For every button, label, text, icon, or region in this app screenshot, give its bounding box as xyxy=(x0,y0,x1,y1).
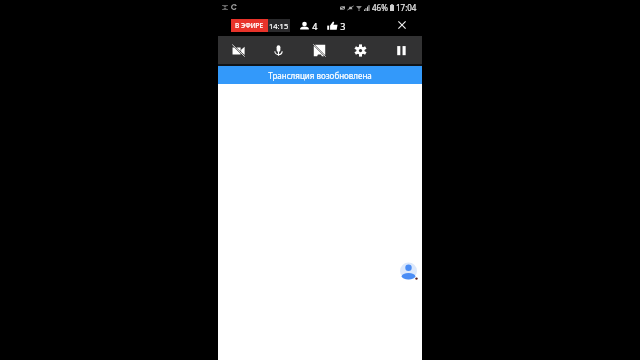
staticText: 4 xyxy=(310,20,318,32)
button[interactable]: 4 xyxy=(299,20,318,32)
button[interactable]: Participant xyxy=(400,261,417,281)
button[interactable]: Pause xyxy=(381,36,422,64)
button[interactable]: 3 xyxy=(327,20,346,32)
button[interactable]: В ЭФИРЕ xyxy=(231,19,290,32)
button[interactable]: Turn chat off xyxy=(299,36,340,64)
staticText: 17:04 xyxy=(396,2,417,13)
button[interactable]: Settings xyxy=(340,36,381,64)
staticText: В ЭФИРЕ xyxy=(235,21,264,30)
staticText: 3 xyxy=(338,20,346,32)
button[interactable]: Close xyxy=(394,17,410,33)
staticText: 14:15 xyxy=(269,21,289,31)
button[interactable]: Microphone xyxy=(258,36,299,64)
staticText: Трансляция возобновлена xyxy=(268,70,372,81)
staticText: 46% xyxy=(372,2,388,13)
button[interactable]: Turn camera off xyxy=(218,36,258,64)
